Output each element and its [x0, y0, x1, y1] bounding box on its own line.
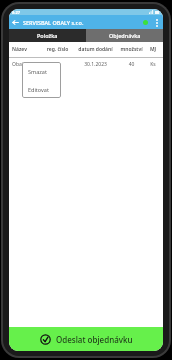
staticText: MJ: [146, 46, 160, 53]
staticText: Odeslat objednávku: [56, 334, 133, 345]
staticText: 30.1.2023: [74, 61, 117, 68]
staticText: datum dodání: [74, 46, 117, 53]
button[interactable]: Back: [9, 16, 21, 28]
button[interactable]: Smazat: [22, 62, 61, 80]
staticText: Obal: [12, 61, 41, 68]
button[interactable]: More options: [151, 17, 162, 28]
button[interactable]: Odeslat objednávku: [9, 327, 163, 351]
staticText: množství: [117, 46, 146, 53]
button[interactable]: Objednávka: [86, 29, 163, 42]
button[interactable]: Obal: [12, 61, 160, 68]
staticText: Položka: [37, 32, 58, 39]
staticText: reg. číslo: [41, 46, 74, 53]
button[interactable]: Editovat: [22, 80, 61, 98]
staticText: Smazat: [28, 68, 47, 75]
staticText: 40: [117, 61, 146, 68]
staticText: 6: [41, 61, 74, 68]
staticText: 8:27: [12, 10, 20, 15]
staticText: Objednávka: [109, 32, 141, 39]
staticText: Ks: [146, 61, 160, 68]
staticText: Editovat: [28, 86, 49, 93]
button[interactable]: Status: [140, 17, 151, 28]
staticText: Název: [12, 46, 41, 53]
button[interactable]: Položka: [9, 29, 86, 42]
staticText: SERVISBAL OBALY s.r.o.: [23, 19, 84, 26]
